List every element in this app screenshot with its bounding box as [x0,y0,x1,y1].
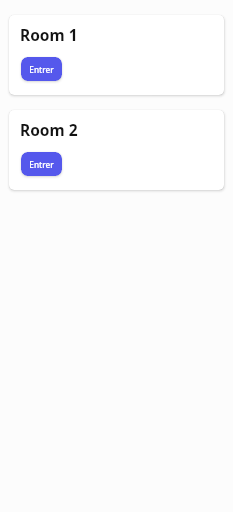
button[interactable]: Room 2 [9,110,224,190]
staticText: Room 1 [20,24,78,45]
button[interactable]: Room 1 [9,15,224,95]
button[interactable]: Entrer [21,152,62,176]
button[interactable]: Entrer [21,57,62,81]
staticText: Entrer [29,159,54,170]
staticText: Entrer [29,64,54,75]
staticText: Room 2 [20,119,78,140]
